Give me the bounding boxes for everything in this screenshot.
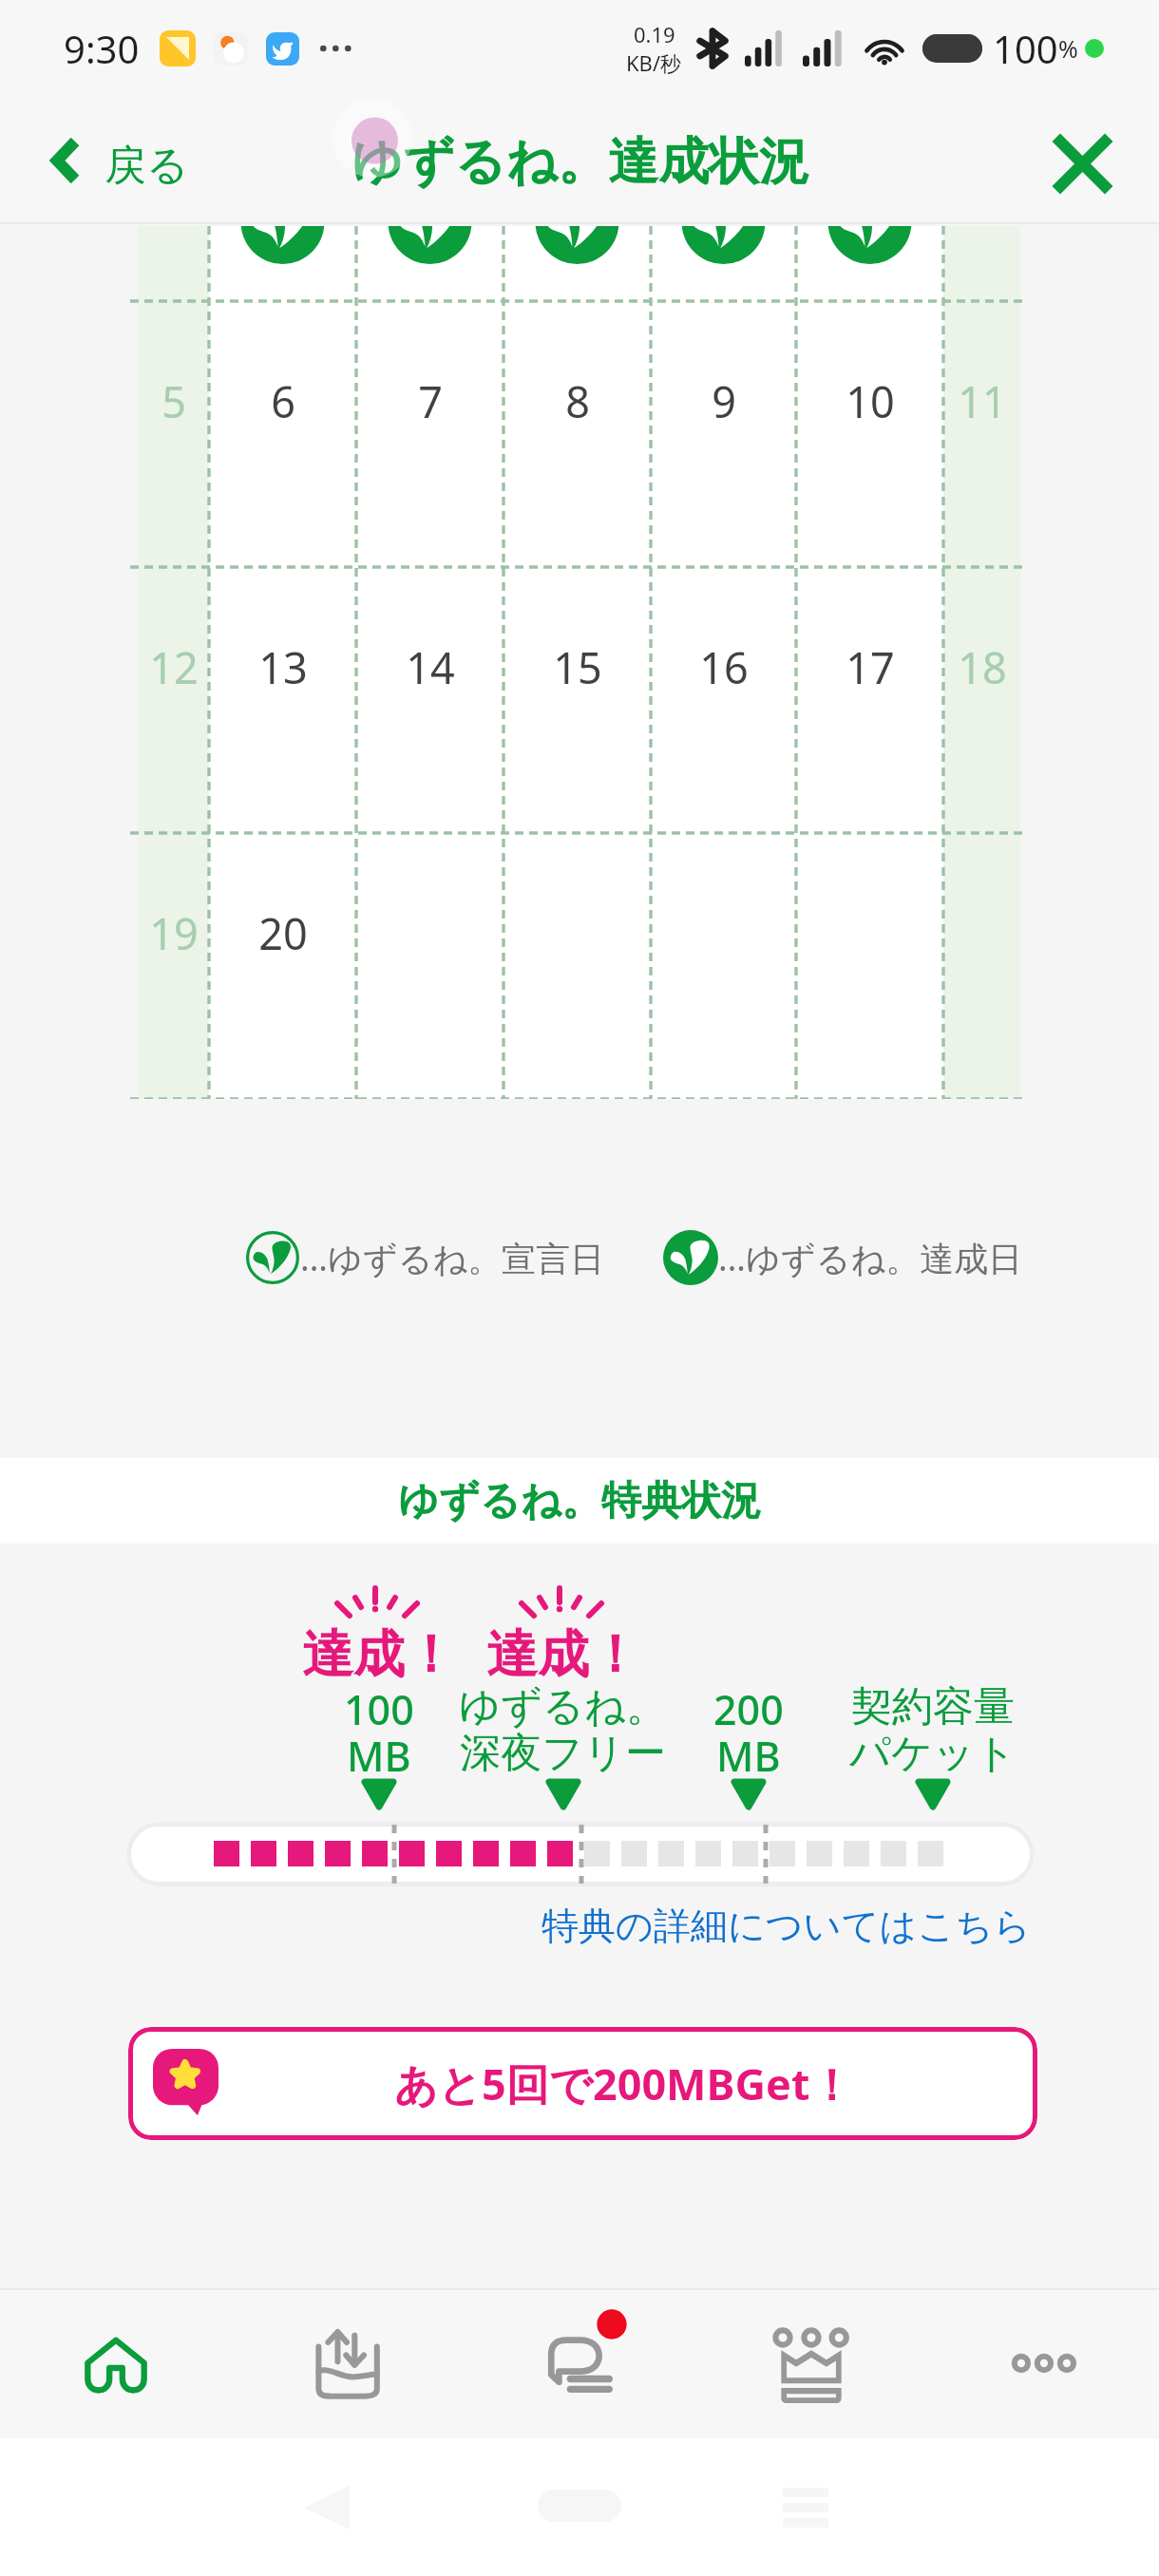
button[interactable]: 閉じる xyxy=(1049,130,1115,197)
staticText: 17 xyxy=(845,638,895,696)
staticText: 5 xyxy=(161,372,186,430)
staticText: 契約容量 xyxy=(851,1681,1015,1729)
staticText: 0.19 xyxy=(634,20,675,48)
staticText: パケット xyxy=(849,1728,1017,1775)
button[interactable]: その他 xyxy=(927,2288,1159,2438)
staticText: 12 xyxy=(149,638,199,696)
staticText: ...ゆずるね。宣言日 xyxy=(300,1235,605,1281)
staticText: 100 xyxy=(344,1681,414,1729)
button[interactable]: データ利用 xyxy=(232,2288,464,2438)
staticText: 19 xyxy=(149,904,199,962)
staticText: MB xyxy=(716,1728,781,1775)
staticText: 100 xyxy=(993,23,1058,74)
staticText: 9:30 xyxy=(64,23,140,74)
staticText: 10 xyxy=(845,372,895,430)
staticText: % xyxy=(1058,32,1078,65)
staticText: 20 xyxy=(258,904,308,962)
staticText: 200 xyxy=(713,1681,784,1729)
staticText: MB xyxy=(347,1728,411,1775)
button[interactable]: 戻る xyxy=(0,105,222,215)
staticText: ...ゆずるね。達成日 xyxy=(718,1235,1023,1281)
staticText: 18 xyxy=(958,638,1007,696)
staticText: 11 xyxy=(958,372,1007,430)
staticText: 達成！ xyxy=(302,1622,456,1681)
button[interactable]: あと5回で200MBGet！ xyxy=(128,2027,1037,2140)
staticText: ゆずるね。 xyxy=(459,1681,668,1729)
staticText: 特典の詳細についてはこちら xyxy=(541,1903,1032,1949)
button[interactable]: ホーム xyxy=(0,2288,232,2438)
button[interactable]: お知らせ xyxy=(464,2288,695,2438)
staticText: ゆずるね。特典状況 xyxy=(398,1476,761,1526)
staticText: 14 xyxy=(406,638,455,696)
staticText: 15 xyxy=(553,638,602,696)
staticText: 9 xyxy=(712,372,736,430)
staticText: 達成！ xyxy=(486,1622,640,1681)
staticText: 戻る xyxy=(104,140,190,192)
button[interactable]: 特典 xyxy=(695,2288,927,2438)
staticText: 6 xyxy=(271,372,295,430)
staticText: 8 xyxy=(565,372,590,430)
staticText: KB/秒 xyxy=(626,48,682,77)
staticText: 深夜フリー xyxy=(460,1728,667,1775)
staticText: 16 xyxy=(699,638,749,696)
staticText: ゆずるね。達成状況 xyxy=(351,130,809,194)
staticText: 7 xyxy=(418,372,443,430)
staticText: 13 xyxy=(258,638,308,696)
staticText: あと5回で200MBGet！ xyxy=(394,2055,853,2112)
button[interactable]: 特典の詳細についてはこちら xyxy=(530,1893,1043,1959)
